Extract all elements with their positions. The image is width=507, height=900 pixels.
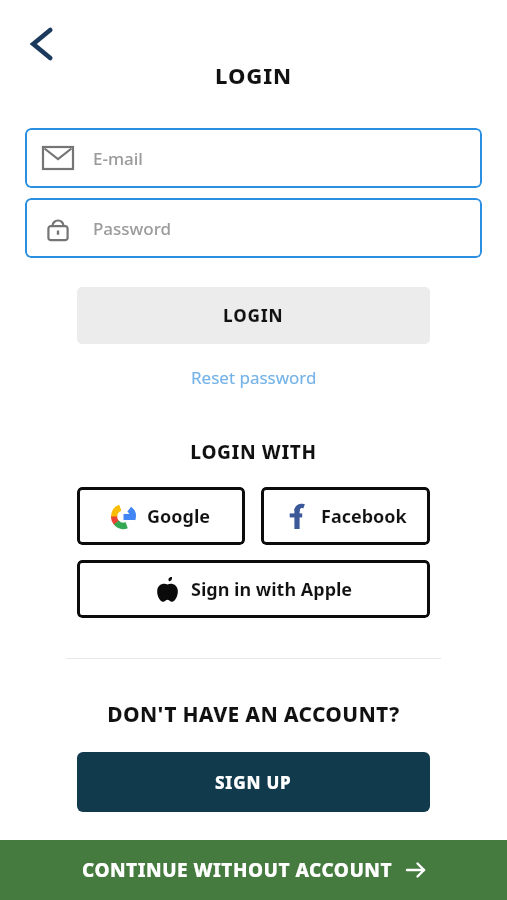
button[interactable]: Facebook <box>261 487 430 545</box>
button[interactable]: Back <box>18 18 70 70</box>
button[interactable]: LOGIN <box>77 287 430 344</box>
button[interactable]: Google <box>77 487 245 545</box>
button[interactable]: CONTINUE WITHOUT ACCOUNT <box>0 840 507 900</box>
staticText: Google <box>147 504 211 529</box>
staticText: Password <box>93 217 172 240</box>
staticText: Sign in with Apple <box>191 577 353 602</box>
staticText: SIGN UP <box>215 771 292 794</box>
staticText: DON'T HAVE AN ACCOUNT? <box>0 700 507 729</box>
button[interactable]: E-mail <box>25 128 482 188</box>
button[interactable]: SIGN UP <box>77 752 430 812</box>
button[interactable]: Sign in with Apple <box>77 560 430 618</box>
staticText: LOGIN <box>223 304 284 327</box>
button[interactable]: Password <box>25 198 482 258</box>
staticText: LOGIN <box>0 60 507 90</box>
staticText: CONTINUE WITHOUT ACCOUNT <box>82 857 392 883</box>
button[interactable]: Reset password <box>185 364 323 391</box>
staticText: E-mail <box>93 147 143 170</box>
staticText: LOGIN WITH <box>0 439 507 465</box>
staticText: Facebook <box>321 504 407 529</box>
staticText: Reset password <box>191 366 317 389</box>
